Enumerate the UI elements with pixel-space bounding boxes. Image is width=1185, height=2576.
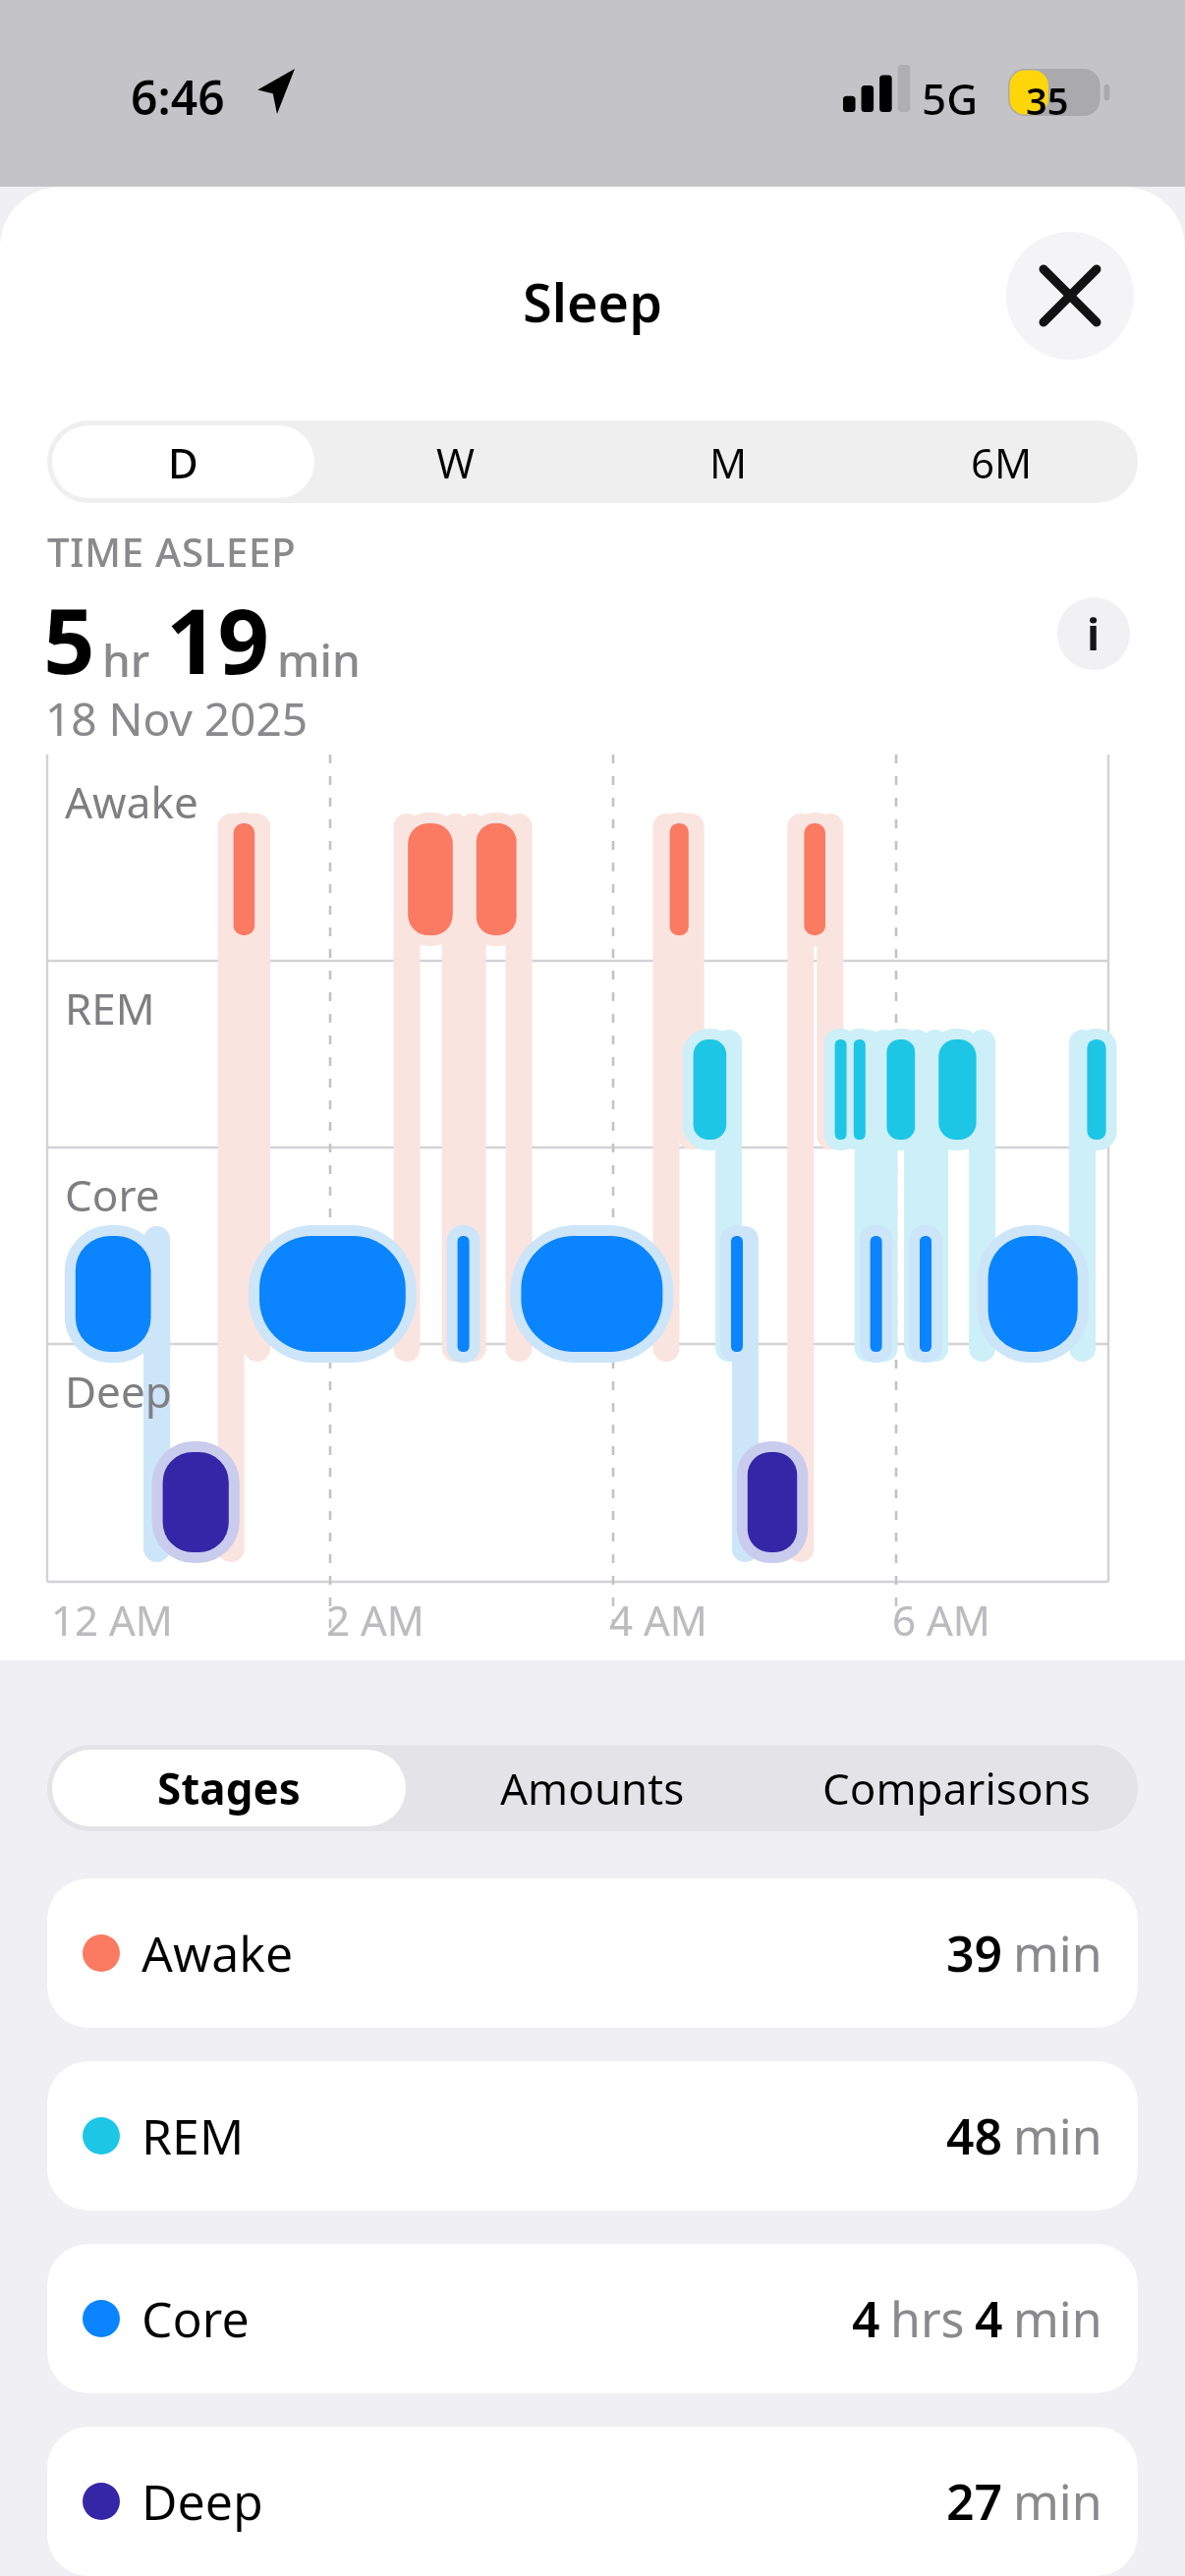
button[interactable]: Close — [1006, 232, 1134, 360]
staticText: 5G — [922, 69, 979, 128]
staticText: hr — [102, 629, 150, 691]
staticText: D — [168, 434, 198, 490]
staticText: REM — [65, 979, 155, 1037]
staticText: Deep — [65, 1362, 172, 1421]
staticText: Sleep — [0, 265, 1185, 338]
staticText: 6 AM — [892, 1592, 990, 1648]
button[interactable]: Stages — [52, 1750, 406, 1826]
staticText: i — [1087, 604, 1100, 663]
button[interactable]: M — [596, 425, 860, 498]
staticText: Awake — [65, 772, 198, 831]
staticText: hrs — [890, 2285, 965, 2352]
staticText: 19 — [166, 578, 270, 700]
button[interactable]: Awake — [47, 1878, 1138, 2028]
button[interactable]: Core — [47, 2244, 1138, 2393]
staticText: 6:46 — [131, 65, 225, 129]
staticText: 2 AM — [326, 1592, 424, 1648]
staticText: min — [1013, 2468, 1102, 2535]
staticText: 18 Nov 2025 — [45, 688, 309, 750]
button[interactable]: 6M — [870, 425, 1133, 498]
staticText: 6M — [971, 434, 1033, 490]
staticText: Core — [65, 1165, 160, 1224]
staticText: 5 — [43, 578, 95, 700]
button[interactable]: Comparisons — [779, 1750, 1133, 1826]
staticText: Comparisons — [822, 1759, 1091, 1818]
staticText: M — [709, 434, 748, 490]
staticText: 4 AM — [609, 1592, 707, 1648]
staticText: min — [277, 629, 361, 691]
button[interactable]: REM — [47, 2061, 1138, 2211]
staticText: Amounts — [500, 1759, 685, 1818]
staticText: min — [1013, 2285, 1102, 2352]
button[interactable]: Info — [1057, 597, 1130, 670]
button[interactable]: Amounts — [416, 1750, 769, 1826]
staticText: REM — [141, 2102, 245, 2169]
staticText: 4 — [852, 2285, 880, 2352]
button[interactable]: W — [324, 425, 587, 498]
staticText: 12 AM — [51, 1592, 173, 1648]
button[interactable]: Deep — [47, 2427, 1138, 2576]
staticText: Core — [141, 2285, 250, 2352]
staticText: 39 — [946, 1920, 1003, 1987]
staticText: TIME ASLEEP — [47, 525, 297, 578]
staticText: min — [1013, 1920, 1102, 1987]
button[interactable]: D — [52, 425, 314, 498]
staticText: 35 — [1026, 75, 1069, 126]
staticText: min — [1013, 2102, 1102, 2169]
staticText: 48 — [946, 2102, 1003, 2169]
staticText: Deep — [141, 2468, 263, 2535]
staticText: Awake — [141, 1920, 294, 1987]
staticText: 4 — [975, 2285, 1003, 2352]
staticText: Stages — [157, 1759, 301, 1818]
staticText: W — [436, 434, 476, 490]
staticText: 27 — [946, 2468, 1003, 2535]
